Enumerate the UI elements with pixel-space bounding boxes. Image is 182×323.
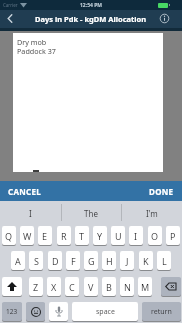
staticText: B: [106, 281, 112, 293]
staticText: W: [23, 230, 32, 242]
staticText: P: [170, 230, 176, 242]
staticText: Q: [5, 230, 13, 242]
staticText: G: [88, 255, 95, 267]
staticText: J: [126, 255, 129, 267]
staticText: Dry mob: [17, 37, 47, 47]
button[interactable]: M: [138, 277, 152, 296]
button[interactable]: W: [20, 226, 34, 245]
staticText: A: [15, 255, 21, 267]
button[interactable]: DONE: [122, 181, 182, 201]
button[interactable]: O: [148, 226, 162, 245]
button[interactable]: P: [166, 226, 180, 245]
staticText: T: [79, 230, 85, 242]
staticText: R: [61, 230, 67, 242]
staticText: Y: [97, 230, 103, 242]
staticText: The: [84, 208, 98, 219]
button[interactable]: return: [142, 302, 181, 321]
button[interactable]: C: [65, 277, 79, 296]
staticText: D: [52, 255, 59, 267]
button[interactable]: H: [102, 251, 116, 270]
staticText: N: [124, 281, 131, 293]
staticText: I: [29, 208, 32, 219]
button[interactable]: F: [66, 251, 80, 270]
staticText: return: [151, 307, 172, 317]
button[interactable]: V: [84, 277, 98, 296]
button[interactable]: J: [120, 251, 134, 270]
staticText: Days in Pdk - kgDM Allocation: [35, 14, 147, 24]
staticText: DONE: [149, 186, 174, 197]
staticText: E: [42, 230, 48, 242]
button[interactable]: [49, 302, 68, 321]
staticText: L: [162, 255, 167, 267]
button[interactable]: Z: [29, 277, 43, 296]
button[interactable]: [161, 277, 181, 296]
staticText: F: [71, 255, 76, 267]
button[interactable]: [13, 33, 163, 172]
staticText: 12:54 PM: [80, 2, 102, 9]
staticText: H: [106, 255, 113, 267]
button[interactable]: X: [47, 277, 61, 296]
button[interactable]: E: [38, 226, 52, 245]
button[interactable]: B: [102, 277, 116, 296]
button[interactable]: N: [120, 277, 134, 296]
button[interactable]: G: [84, 251, 98, 270]
staticText: I'm: [146, 208, 158, 219]
button[interactable]: A: [11, 251, 25, 270]
button[interactable]: CANCEL: [0, 181, 60, 201]
staticText: O: [151, 230, 159, 242]
button[interactable]: I: [129, 226, 143, 245]
staticText: 123: [6, 307, 18, 316]
staticText: CANCEL: [8, 186, 42, 197]
button[interactable]: D: [48, 251, 62, 270]
button[interactable]: [2, 277, 22, 296]
button[interactable]: I: [0, 202, 60, 224]
staticText: Paddock 37: [17, 46, 56, 56]
staticText: C: [69, 281, 75, 293]
staticText: Carrier: [3, 2, 18, 8]
staticText: Z: [33, 281, 39, 293]
button[interactable]: space: [72, 302, 138, 321]
button[interactable]: R: [57, 226, 71, 245]
staticText: V: [88, 281, 94, 293]
staticText: X: [51, 281, 57, 293]
button[interactable]: L: [157, 251, 171, 270]
staticText: S: [34, 255, 39, 267]
button[interactable]: 123: [2, 302, 22, 321]
button[interactable]: I'm: [122, 202, 182, 224]
button[interactable]: Y: [93, 226, 107, 245]
button[interactable]: The: [61, 202, 121, 224]
button[interactable]: [158, 12, 171, 25]
button[interactable]: U: [111, 226, 125, 245]
button[interactable]: [26, 302, 45, 321]
button[interactable]: Q: [2, 226, 16, 245]
button[interactable]: S: [29, 251, 43, 270]
staticText: U: [115, 230, 122, 242]
button[interactable]: T: [75, 226, 89, 245]
staticText: I: [134, 230, 138, 242]
button[interactable]: [3, 11, 17, 26]
staticText: K: [143, 255, 149, 267]
staticText: M: [141, 281, 150, 293]
button[interactable]: K: [139, 251, 153, 270]
staticText: space: [96, 307, 115, 317]
